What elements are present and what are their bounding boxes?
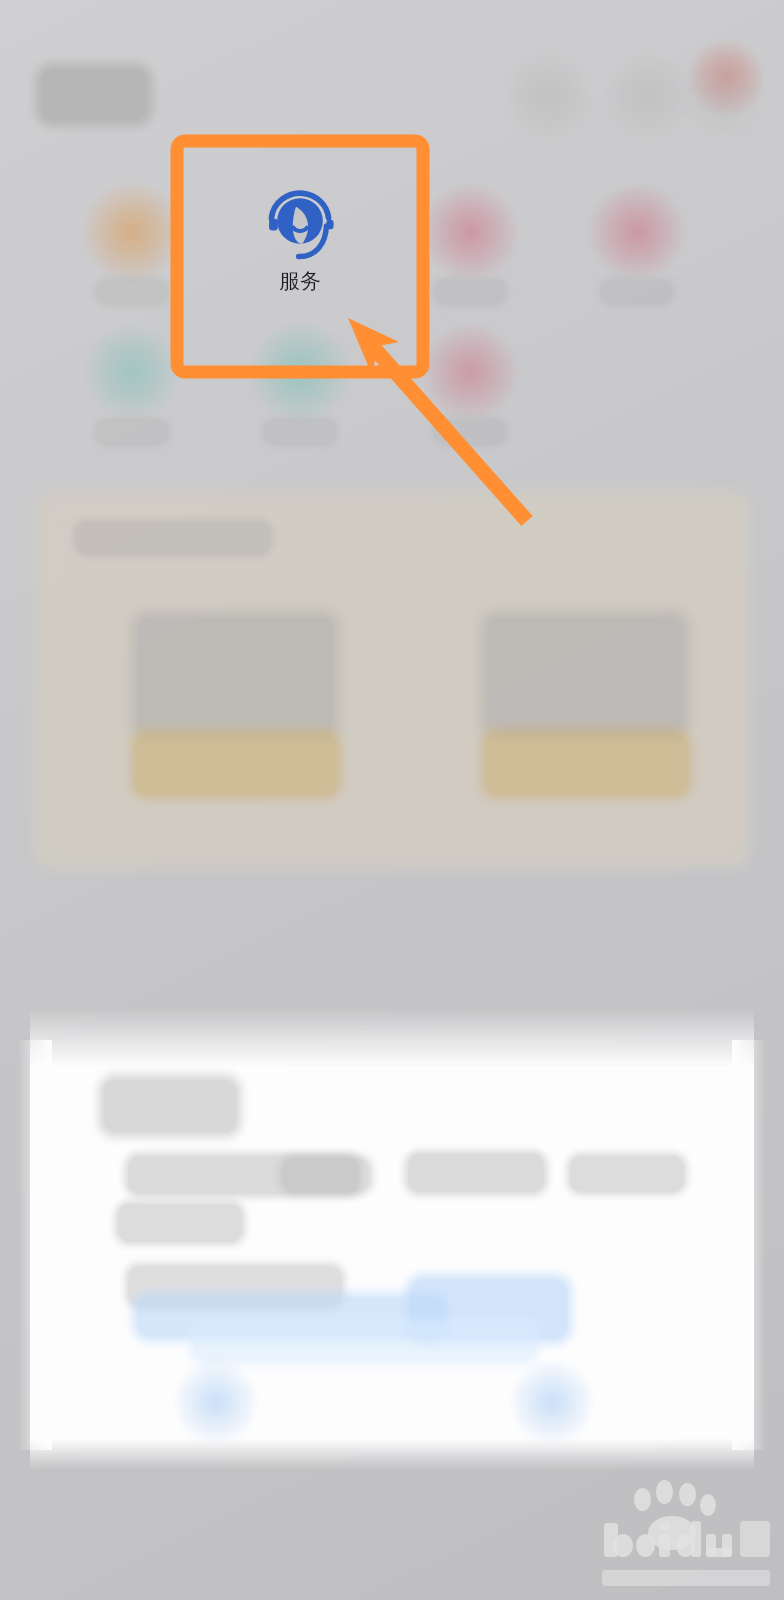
staticText: 服务 [222, 268, 378, 298]
button[interactable]: 服务 Customer service [222, 186, 378, 318]
